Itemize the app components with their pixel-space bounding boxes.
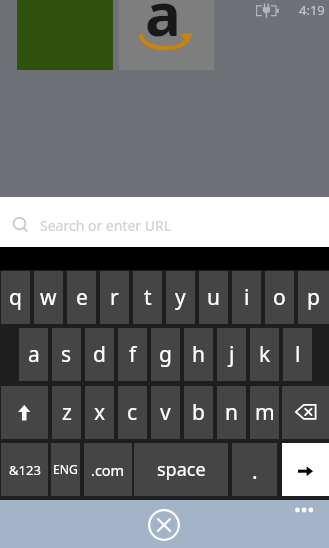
button[interactable]: Search or enter URL [0, 197, 329, 247]
staticText: m [255, 398, 275, 427]
staticText: x [94, 398, 106, 427]
button[interactable]: r [100, 271, 129, 324]
staticText: v [160, 398, 171, 427]
button[interactable]: x [85, 386, 114, 439]
staticText: f [129, 340, 137, 369]
button[interactable]: h [184, 328, 213, 381]
staticText: z [62, 398, 72, 427]
staticText: s [61, 340, 72, 369]
button[interactable]: d [85, 328, 114, 381]
button[interactable]: space [134, 443, 228, 496]
staticText: &123 [9, 461, 41, 479]
staticText: u [207, 283, 220, 312]
staticText: . [252, 457, 258, 486]
staticText: j [229, 340, 235, 369]
button[interactable]: l [283, 328, 312, 381]
button[interactable]: v [151, 386, 180, 439]
other: Battery charging [256, 5, 280, 21]
button[interactable]: Backspace [282, 386, 329, 439]
button[interactable]: More options [293, 503, 317, 517]
button[interactable]: f [118, 328, 147, 381]
staticText: t [144, 283, 152, 312]
staticText: h [192, 340, 205, 369]
button[interactable]: &123 [1, 443, 48, 496]
button[interactable]: k [250, 328, 279, 381]
staticText: a [145, 0, 181, 54]
button[interactable]: a [19, 328, 48, 381]
staticText: Search or enter URL [40, 216, 172, 235]
button[interactable]: y [166, 271, 195, 324]
button[interactable]: i [232, 271, 261, 324]
staticText: o [273, 283, 286, 312]
staticText: r [110, 283, 119, 312]
staticText: p [307, 283, 320, 312]
button[interactable]: e [67, 271, 96, 324]
button[interactable]: z [52, 386, 81, 439]
button[interactable]: q [1, 271, 30, 324]
button[interactable]: p [298, 271, 329, 324]
button[interactable]: w [34, 271, 63, 324]
button[interactable]: m [250, 386, 279, 439]
staticText: n [225, 398, 238, 427]
staticText: i [244, 283, 250, 312]
staticText: ENG [53, 461, 78, 478]
button[interactable]: t [133, 271, 162, 324]
staticText: g [159, 340, 172, 369]
staticText: l [295, 340, 301, 369]
staticText: .com [91, 460, 125, 480]
staticText: y [175, 283, 186, 312]
staticText: w [40, 283, 57, 312]
staticText: e [76, 283, 88, 312]
button[interactable]: u [199, 271, 228, 324]
button[interactable]: Close keyboard [148, 509, 180, 541]
button[interactable]: s [52, 328, 81, 381]
staticText: a [28, 340, 40, 369]
button[interactable]: Go [282, 443, 329, 496]
button[interactable]: o [265, 271, 294, 324]
button[interactable]: ENG [51, 443, 80, 496]
button[interactable]: g [151, 328, 180, 381]
button[interactable]: Amazon [119, 0, 214, 70]
button[interactable]: n [217, 386, 246, 439]
staticText: b [192, 398, 205, 427]
staticText: 4:19 [299, 1, 325, 19]
button[interactable]: c [118, 386, 147, 439]
button[interactable]: . [232, 443, 277, 496]
staticText: space [157, 457, 206, 482]
button[interactable]: .com [84, 443, 132, 496]
button[interactable]: Shift [1, 386, 48, 439]
staticText: d [93, 340, 106, 369]
staticText: k [259, 340, 271, 369]
button[interactable]: j [217, 328, 246, 381]
button[interactable]: b [184, 386, 213, 439]
staticText: c [127, 398, 138, 427]
staticText: q [9, 283, 22, 312]
